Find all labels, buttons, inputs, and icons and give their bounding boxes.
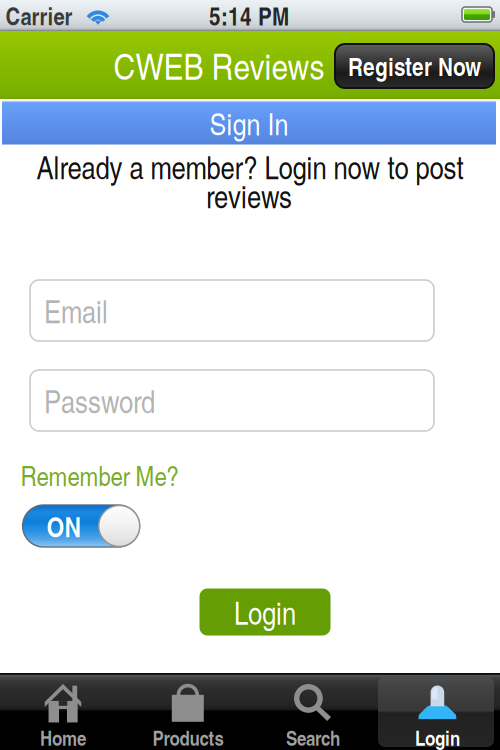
- button[interactable]: ON: [23, 505, 140, 547]
- button[interactable]: Register Now: [335, 44, 494, 88]
- staticText: Products: [152, 723, 223, 750]
- staticText: CWEB Reviews: [113, 40, 324, 90]
- staticText: Already a member? Login now to post: [36, 145, 463, 188]
- button[interactable]: Login: [375, 673, 500, 750]
- staticText: ON: [46, 506, 81, 546]
- button[interactable]: Home: [0, 673, 125, 750]
- button[interactable]: Search: [250, 673, 375, 750]
- staticText: Remember Me?: [20, 456, 178, 494]
- staticText: Register Now: [348, 48, 481, 84]
- staticText: reviews: [206, 174, 292, 217]
- staticText: Sign In: [209, 102, 288, 144]
- staticText: Home: [40, 723, 86, 750]
- staticText: 5:14 PM: [209, 0, 289, 33]
- staticText: Password: [44, 379, 155, 422]
- staticText: Email: [44, 289, 108, 332]
- staticText: Carrier: [5, 0, 72, 33]
- staticText: Login: [415, 723, 460, 750]
- staticText: Search: [286, 723, 340, 750]
- staticText: Login: [234, 590, 296, 633]
- button[interactable]: Login: [199, 588, 330, 635]
- button[interactable]: Products: [125, 673, 250, 750]
